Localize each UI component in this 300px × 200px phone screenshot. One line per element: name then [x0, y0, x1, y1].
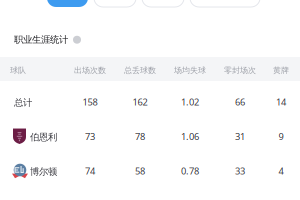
staticText: 出场次数 — [74, 65, 106, 75]
staticText: 33 — [235, 165, 245, 177]
staticText: 0.78 — [181, 165, 199, 177]
staticText: 总丢球数 — [124, 65, 156, 75]
staticText: 1.02 — [181, 96, 199, 108]
staticText: 14 — [276, 96, 286, 108]
button[interactable]: 英超 — [47, 0, 88, 7]
staticText: 总计 — [14, 97, 32, 108]
staticText: 场均失球 — [174, 65, 206, 75]
staticText: 158 — [82, 96, 97, 108]
staticText: 伯恩利 — [30, 131, 57, 143]
button[interactable]: 职业生涯统计说明 — [14, 34, 81, 45]
staticText: 9 — [278, 130, 283, 143]
button[interactable]: 足总杯 — [142, 0, 184, 7]
staticText: 74 — [85, 165, 95, 177]
staticText: 66 — [235, 96, 245, 108]
staticText: 1.06 — [181, 130, 199, 143]
staticText: 73 — [85, 130, 95, 143]
button[interactable]: 英冠 — [94, 0, 136, 7]
staticText: 58 — [135, 165, 145, 177]
staticText: 162 — [132, 96, 147, 108]
staticText: 4 — [278, 165, 283, 177]
staticText: 31 — [235, 130, 245, 143]
staticText: 黄牌 — [273, 65, 289, 75]
staticText: 78 — [135, 130, 145, 143]
staticText: 博尔顿 — [30, 166, 57, 177]
staticText: 零封场次 — [224, 65, 256, 75]
button[interactable]: 总计 — [0, 0, 300, 200]
button[interactable]: 更多赛事 — [190, 0, 260, 7]
staticText: 职业生涯统计 — [14, 34, 68, 45]
staticText: 球队 — [10, 65, 26, 75]
button[interactable]: 伯恩利 — [0, 0, 300, 200]
button[interactable]: 博尔顿 — [0, 0, 300, 200]
